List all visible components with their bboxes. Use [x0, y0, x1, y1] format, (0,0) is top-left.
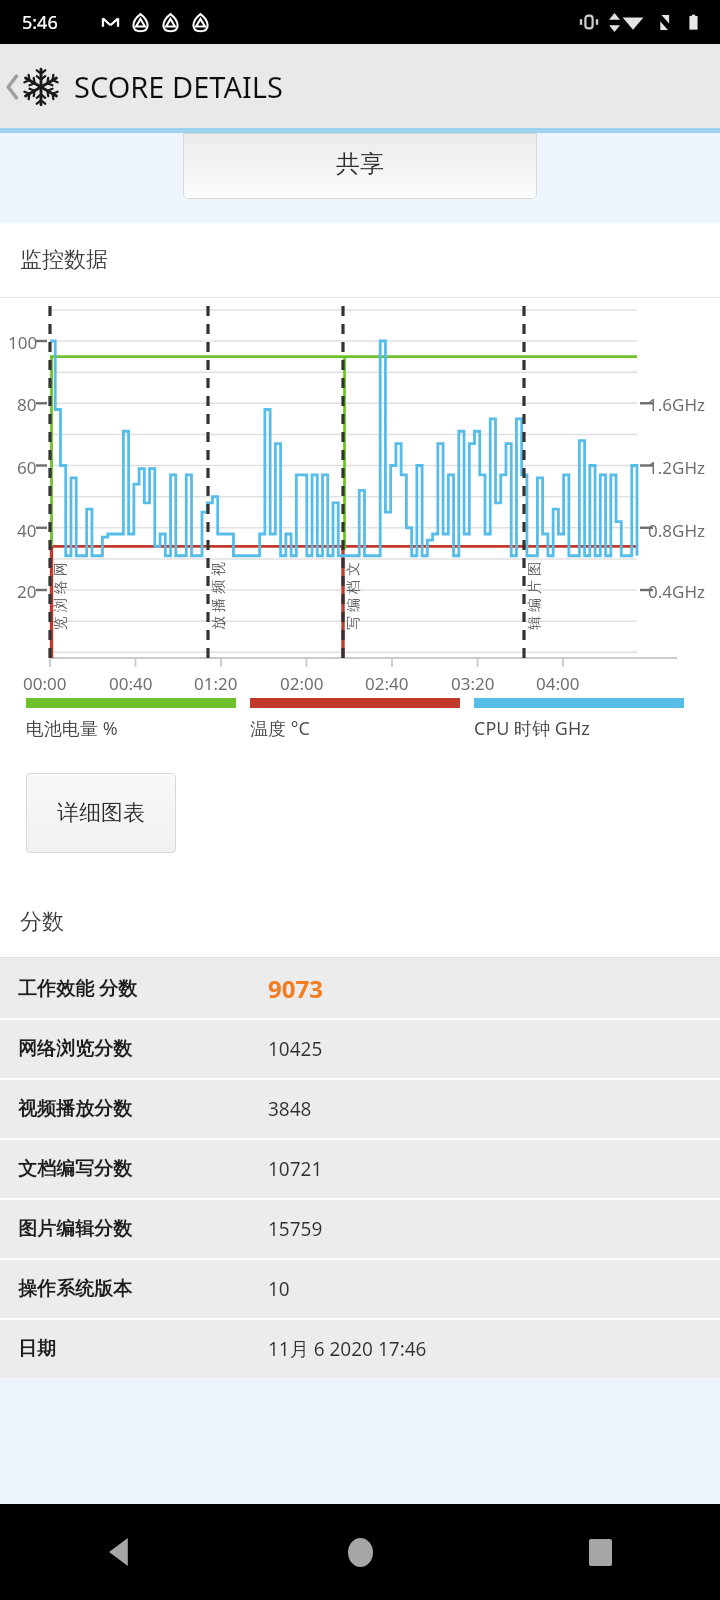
staticText: 放 — [210, 616, 228, 630]
staticText: 编 — [526, 598, 544, 612]
staticText: 20 — [17, 580, 37, 603]
staticText: 分数 — [20, 908, 64, 936]
staticText: 操作系统版本 — [18, 1277, 268, 1301]
staticText: 00:00 — [23, 672, 67, 695]
staticText: 0.4GHz — [648, 580, 705, 603]
staticText: 00:40 — [109, 672, 153, 695]
staticText: 60 — [17, 456, 37, 479]
staticText: 80 — [17, 393, 37, 416]
staticText: 1.6GHz — [648, 393, 705, 416]
button[interactable]: Home — [323, 1515, 397, 1589]
button[interactable]: 文档编写分数 — [0, 1140, 720, 1198]
staticText: SCORE DETAILS — [74, 67, 283, 106]
staticText: 11月 6 2020 17:46 — [268, 1336, 427, 1362]
staticText: 9073 — [268, 972, 323, 1005]
staticText: 电池电量 % — [26, 716, 118, 741]
button[interactable]: 共享 — [183, 133, 537, 199]
staticText: 100 — [8, 331, 38, 354]
staticText: 图 — [526, 562, 544, 576]
staticText: 辑 — [526, 616, 544, 630]
staticText: 图片编辑分数 — [18, 1217, 268, 1241]
staticText: 文 — [345, 562, 363, 576]
button[interactable]: 日期 — [0, 1320, 720, 1378]
button[interactable]: 视频播放分数 — [0, 1080, 720, 1138]
staticText: 5:46 — [22, 10, 58, 35]
staticText: 频 — [210, 580, 228, 594]
staticText: 1.2GHz — [648, 456, 705, 479]
staticText: 10721 — [268, 1156, 323, 1182]
staticText: 10425 — [268, 1036, 323, 1062]
button[interactable]: 网络浏览分数 — [0, 1020, 720, 1078]
staticText: 网络浏览分数 — [18, 1037, 268, 1061]
staticText: 文档编写分数 — [18, 1157, 268, 1181]
staticText: 写 — [345, 616, 363, 630]
button[interactable]: Back — [4, 67, 283, 106]
staticText: 网 — [52, 562, 70, 576]
staticText: 02:00 — [280, 672, 324, 695]
staticText: 视 — [210, 562, 228, 576]
staticText: 浏 — [52, 598, 70, 612]
staticText: 工作效能 分数 — [18, 975, 268, 1001]
staticText: 络 — [52, 580, 70, 594]
staticText: 02:40 — [365, 672, 409, 695]
staticText: 40 — [17, 519, 37, 542]
staticText: 10 — [268, 1276, 290, 1302]
staticText: 详细图表 — [57, 799, 145, 827]
button[interactable]: 操作系统版本 — [0, 1260, 720, 1318]
staticText: 3848 — [268, 1096, 312, 1122]
staticText: 档 — [345, 580, 363, 594]
button[interactable]: 工作效能 分数 — [0, 958, 720, 1018]
staticText: 04:00 — [536, 672, 580, 695]
staticText: 编 — [345, 598, 363, 612]
staticText: 共享 — [336, 149, 384, 179]
staticText: CPU 时钟 GHz — [474, 716, 590, 741]
staticText: 0.8GHz — [648, 519, 705, 542]
button[interactable]: Back — [83, 1515, 157, 1589]
staticText: 监控数据 — [20, 246, 108, 274]
staticText: 01:20 — [194, 672, 238, 695]
staticText: 览 — [52, 616, 70, 630]
staticText: 日期 — [18, 1337, 268, 1361]
button[interactable]: Recents — [563, 1515, 637, 1589]
staticText: 03:20 — [451, 672, 495, 695]
button[interactable]: 图片编辑分数 — [0, 1200, 720, 1258]
button[interactable]: 详细图表 — [26, 773, 176, 853]
staticText: 片 — [526, 580, 544, 594]
staticText: 播 — [210, 598, 228, 612]
staticText: 15759 — [268, 1216, 323, 1242]
staticText: 视频播放分数 — [18, 1097, 268, 1121]
staticText: 温度 °C — [250, 716, 310, 741]
